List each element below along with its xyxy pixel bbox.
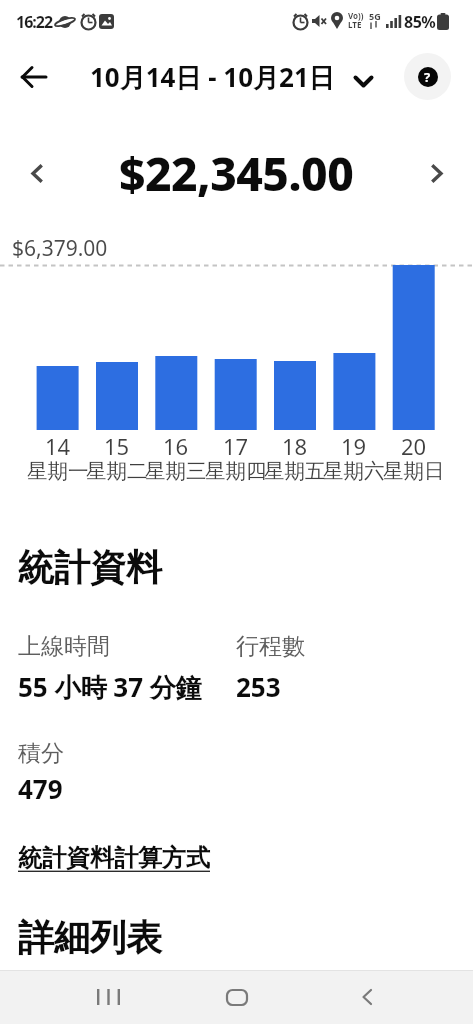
staticText: Vo)) (348, 10, 364, 21)
staticText: 星期二 (86, 458, 148, 484)
button[interactable] (16, 148, 56, 198)
staticText: 17 (223, 431, 249, 461)
staticText: 上線時間 (18, 632, 110, 661)
staticText: 14 (45, 431, 71, 461)
staticText: 星期三 (145, 458, 207, 484)
staticText: 行程數 (236, 632, 305, 661)
staticText: 積分 (18, 739, 64, 768)
staticText: 16 (163, 431, 189, 461)
staticText: $22,345.00 (119, 142, 354, 205)
staticText: 星期一 (27, 458, 89, 484)
button[interactable]: 統計資料計算方式 (18, 843, 210, 873)
staticText: 5G (369, 10, 381, 22)
button[interactable] (345, 975, 389, 1019)
staticText: 55 小時 37 分鐘 (18, 669, 202, 705)
staticText: 星期日 (383, 458, 445, 484)
button[interactable] (215, 975, 259, 1019)
staticText: $6,379.00 (12, 234, 108, 263)
staticText: 20 (401, 431, 427, 461)
staticText: 星期四 (205, 458, 267, 484)
button[interactable]: 10月14日 - 10月21日 (90, 54, 382, 102)
staticText: 星期五 (264, 458, 326, 484)
staticText: 詳細列表 (18, 915, 162, 960)
staticText: LTE (348, 19, 362, 30)
staticText: 15 (104, 431, 130, 461)
button[interactable] (417, 148, 457, 198)
button[interactable]: ? (404, 53, 451, 100)
staticText: 85% (404, 11, 436, 33)
staticText: 18 (282, 431, 308, 461)
staticText: ? (424, 68, 431, 86)
button[interactable] (86, 975, 130, 1019)
button[interactable] (12, 60, 56, 94)
staticText: 10月14日 - 10月21日 (90, 59, 335, 95)
staticText: 統計資料 (18, 545, 162, 590)
staticText: 479 (18, 771, 63, 806)
staticText: 16:22 (16, 11, 53, 33)
staticText: 253 (236, 669, 281, 704)
staticText: 19 (341, 431, 367, 461)
staticText: 星期六 (323, 458, 385, 484)
